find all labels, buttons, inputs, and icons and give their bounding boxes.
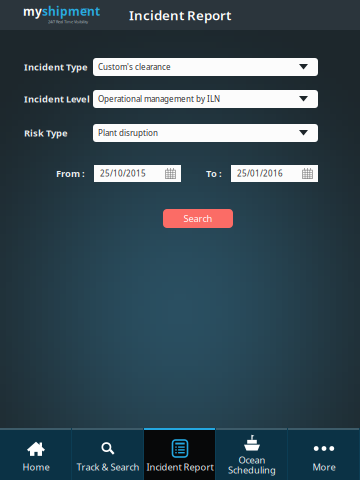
button[interactable]: 25/01/2016: [231, 165, 318, 182]
staticText: Plant disruption: [98, 128, 158, 138]
button[interactable]: Plant disruption: [93, 124, 318, 142]
staticText: From :: [56, 167, 85, 180]
staticText: Incident Report: [129, 6, 231, 24]
button[interactable]: 25/10/2015: [94, 165, 181, 182]
staticText: Scheduling: [228, 464, 276, 476]
button[interactable]: Operational management by ILN: [93, 90, 318, 108]
staticText: 25/10/2015: [100, 168, 146, 179]
button[interactable]: More: [288, 428, 360, 480]
button[interactable]: myshipment.com home: [23, 4, 103, 26]
staticText: .com: [80, 6, 89, 11]
button[interactable]: Custom's clearance: [93, 58, 318, 76]
staticText: Incident Report: [146, 461, 213, 473]
staticText: Risk Type: [24, 127, 68, 139]
staticText: shipment: [42, 3, 100, 19]
staticText: More: [312, 461, 335, 473]
button[interactable]: Incident Report: [144, 428, 216, 480]
staticText: 24/7 Real Time Visibility: [48, 19, 88, 24]
staticText: Incident Type: [24, 61, 88, 73]
staticText: To :: [206, 167, 222, 180]
staticText: Incident Level: [24, 93, 90, 105]
button[interactable]: Search: [163, 209, 233, 228]
staticText: Search: [183, 212, 212, 225]
button[interactable]: Home: [0, 428, 72, 480]
staticText: Track & Search: [76, 461, 139, 473]
button[interactable]: Track & Search: [72, 428, 144, 480]
staticText: Custom's clearance: [98, 62, 171, 72]
staticText: my: [23, 3, 42, 19]
staticText: Operational management by ILN: [98, 94, 220, 104]
staticText: 25/01/2016: [237, 168, 283, 179]
staticText: Home: [22, 461, 49, 473]
button[interactable]: Ocean: [216, 428, 288, 480]
staticText: Ocean: [238, 454, 265, 466]
